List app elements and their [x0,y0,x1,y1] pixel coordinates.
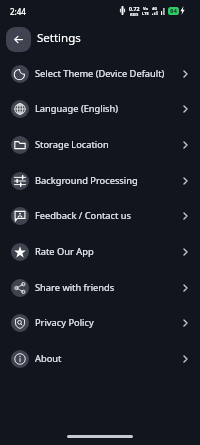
button[interactable]: Storage Location [0,127,200,163]
staticText: Storage Location [35,138,182,151]
staticText: LTE [142,11,149,16]
staticText: Feedback / Contact us [35,209,182,222]
staticText: KB/S [130,12,139,17]
staticText: Background Processing [35,174,182,187]
staticText: Share with friends [35,281,182,294]
staticText: Settings [37,30,81,46]
button[interactable]: About [0,341,200,377]
staticText: Language (English) [35,102,182,115]
button[interactable]: Privacy Policy [0,305,200,341]
staticText: 4G [152,6,158,11]
staticText: 0.72 [129,5,140,12]
button[interactable]: Background Processing [0,163,200,199]
button[interactable]: Language (English) [0,91,200,127]
button[interactable]: Feedback / Contact us [0,198,200,234]
button[interactable]: Select Theme (Device Default) [0,56,200,92]
staticText: 84 [170,7,177,15]
staticText: About [35,352,182,365]
staticText: 2:44 [10,6,26,17]
button[interactable]: Back [6,27,31,52]
staticText: Select Theme (Device Default) [35,67,182,80]
staticText: Vo [143,6,149,11]
staticText: Privacy Policy [35,316,182,329]
staticText: Rate Our App [35,245,182,258]
button[interactable]: Share with friends [0,270,200,306]
button[interactable]: Rate Our App [0,234,200,270]
